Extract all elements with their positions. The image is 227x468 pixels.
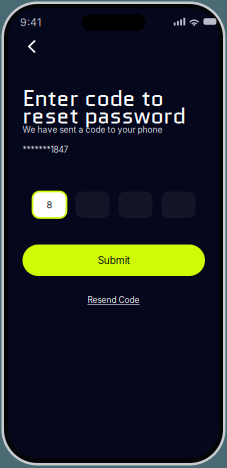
staticText: Submit (98, 254, 130, 266)
staticText: 9:41 (20, 16, 41, 29)
button[interactable]: Code digit 8 (32, 191, 66, 218)
staticText: Resend Code (87, 295, 139, 305)
staticText: Enter code to (22, 82, 163, 114)
button[interactable]: Submit (22, 244, 205, 276)
staticText: We have sent a code to your phone (22, 124, 162, 135)
staticText: reset password (22, 99, 185, 132)
button[interactable]: Back (15, 34, 45, 59)
staticText: 8 (46, 199, 52, 210)
button[interactable]: Resend Code (81, 292, 145, 308)
staticText: *******1847 (22, 144, 68, 155)
